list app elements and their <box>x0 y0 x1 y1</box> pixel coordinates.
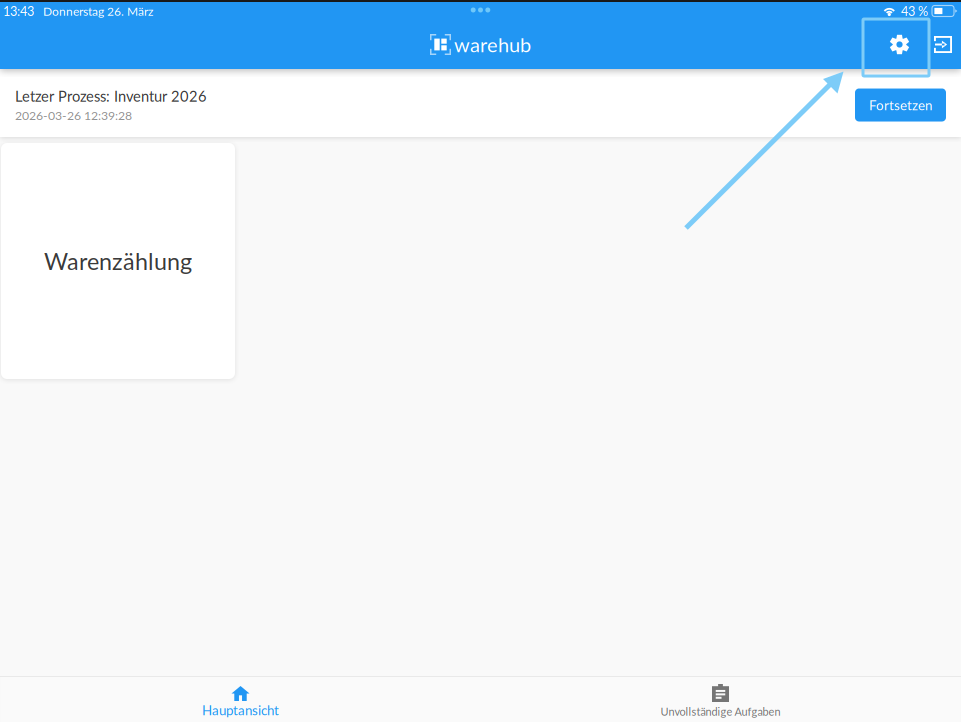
staticText: Hauptansicht <box>202 702 279 718</box>
staticText: Unvollständige Aufgaben <box>660 705 780 718</box>
button[interactable]: Hauptansicht <box>0 677 480 722</box>
button[interactable]: Fortsetzen <box>855 88 946 121</box>
staticText: 43 % <box>901 3 928 19</box>
staticText: Letzer Prozess: Inventur 2026 <box>15 87 207 105</box>
staticText: warehub <box>454 32 531 56</box>
button[interactable]: Einstellungen <box>863 20 929 69</box>
staticText: Warenzählung <box>44 247 192 275</box>
button[interactable]: Anmelden <box>929 20 957 69</box>
staticText: 13:43 <box>3 3 34 19</box>
button[interactable]: Unvollständige Aufgaben <box>480 677 960 722</box>
staticText: Donnerstag 26. März <box>43 4 153 18</box>
staticText: Fortsetzen <box>869 97 932 113</box>
staticText: 2026-03-26 12:39:28 <box>15 108 132 123</box>
button[interactable]: Warenzählung <box>1 143 235 379</box>
